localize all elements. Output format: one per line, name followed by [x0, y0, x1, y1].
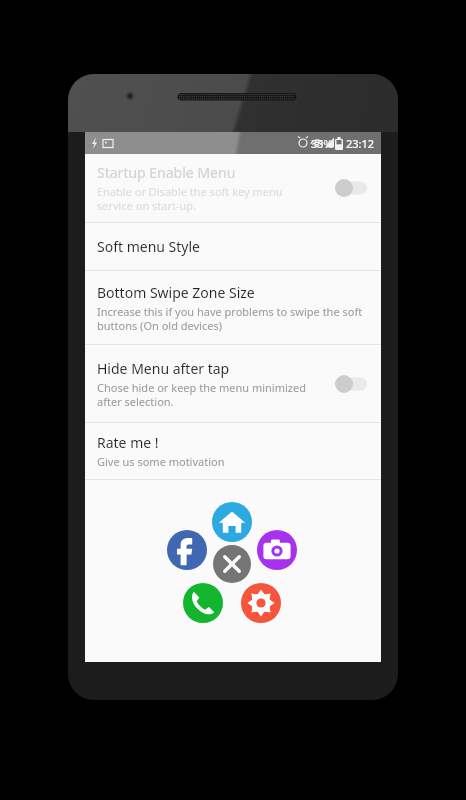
- button[interactable]: Home: [212, 502, 252, 542]
- button[interactable]: Settings: [241, 583, 281, 623]
- staticText: 23:12: [346, 136, 375, 151]
- button[interactable]: Startup Enable Menu: [85, 154, 381, 222]
- staticText: Rate me !: [97, 433, 159, 452]
- staticText: Bottom Swipe Zone Size: [97, 283, 255, 302]
- staticText: Startup Enable Menu: [97, 163, 236, 182]
- staticText: Chose hide or keep the menu minimized af…: [97, 380, 306, 409]
- staticText: Give us some motivation: [97, 454, 225, 469]
- button[interactable]: Soft menu Style: [85, 223, 381, 270]
- button[interactable]: Hide Menu after tap: [85, 345, 381, 422]
- staticText: Enable or Disable the soft key menu serv…: [97, 184, 283, 213]
- button[interactable]: Camera: [257, 530, 297, 570]
- button[interactable]: Toggle Hide Menu after tap: [333, 371, 373, 397]
- button[interactable]: Bottom Swipe Zone Size: [85, 271, 381, 344]
- staticText: Increase this if you have problems to sw…: [97, 304, 363, 333]
- button[interactable]: Call: [183, 583, 223, 623]
- staticText: 35%: [311, 136, 333, 151]
- button[interactable]: Facebook: [167, 530, 207, 570]
- staticText: Soft menu Style: [97, 237, 200, 256]
- staticText: Hide Menu after tap: [97, 359, 230, 378]
- button[interactable]: Rate me !: [85, 423, 381, 479]
- button[interactable]: Close: [213, 545, 251, 583]
- button[interactable]: Toggle Startup Enable Menu: [333, 175, 373, 201]
